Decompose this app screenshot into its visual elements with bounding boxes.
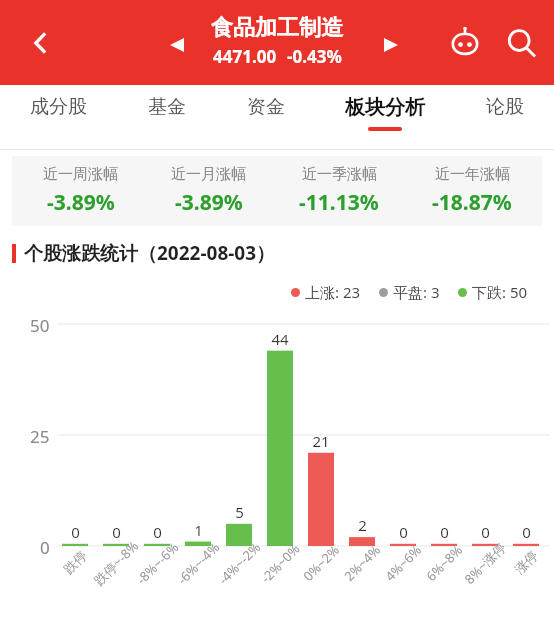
staticText: 0%~2%	[299, 541, 343, 585]
staticText: 1	[194, 520, 203, 540]
button[interactable]: Next sector	[374, 28, 408, 62]
staticText: 8%~涨停	[460, 538, 510, 588]
staticText: 资金	[247, 95, 285, 119]
staticText: 近一季涨幅	[302, 165, 377, 184]
button[interactable]: 成分股	[24, 85, 93, 136]
button[interactable]: 下跌: 50	[458, 282, 528, 302]
staticText: 基金	[148, 95, 186, 119]
staticText: 0	[440, 522, 449, 542]
staticText: 涨停	[511, 547, 541, 577]
staticText: -0.43%	[287, 45, 342, 68]
staticText: 0	[481, 522, 490, 542]
button[interactable]: 近一年涨幅	[432, 165, 512, 217]
staticText: 4471.00	[213, 45, 277, 68]
button[interactable]: Search	[498, 20, 544, 66]
staticText: -4%~-2%	[214, 538, 265, 588]
staticText: -3.89%	[175, 188, 243, 217]
staticText: -3.89%	[47, 188, 115, 217]
staticText: 0	[71, 522, 80, 542]
button[interactable]: Assistant	[442, 20, 488, 66]
staticText: 论股	[486, 95, 524, 119]
button[interactable]: Previous sector	[160, 28, 194, 62]
staticText: -11.13%	[299, 188, 379, 217]
staticText: -18.87%	[432, 188, 512, 217]
button[interactable]: 近一季涨幅	[299, 165, 379, 217]
staticText: 4%~6%	[381, 541, 425, 585]
staticText: 跌停~-8%	[90, 537, 142, 589]
staticText: 50	[30, 314, 50, 337]
staticText: -6%~-4%	[173, 538, 224, 588]
button[interactable]: 上涨: 23	[291, 282, 361, 302]
staticText: 5	[235, 502, 244, 522]
button[interactable]: 论股	[480, 85, 530, 136]
staticText: 0	[399, 522, 408, 542]
staticText: 6%~8%	[422, 541, 466, 585]
staticText: 跌停	[60, 547, 90, 577]
staticText: 上涨: 23	[305, 282, 361, 302]
button[interactable]: Back	[20, 22, 62, 64]
button[interactable]: 资金	[241, 85, 291, 136]
staticText: 44	[271, 329, 289, 349]
button[interactable]: 平盘: 3	[379, 282, 440, 302]
staticText: 0	[153, 522, 162, 542]
button[interactable]: 板块分析	[339, 85, 431, 141]
staticText: 下跌: 50	[472, 282, 528, 302]
button[interactable]: 近一周涨幅	[43, 165, 118, 217]
staticText: 0	[522, 522, 531, 542]
staticText: 近一年涨幅	[435, 165, 510, 184]
staticText: 近一月涨幅	[171, 165, 246, 184]
staticText: 2	[358, 515, 367, 535]
staticText: 25	[30, 425, 50, 448]
staticText: 食品加工制造	[211, 14, 343, 42]
staticText: 成分股	[30, 95, 87, 119]
staticText: -8%~-6%	[132, 538, 183, 588]
staticText: 2%~4%	[340, 541, 384, 585]
staticText: 个股涨跌统计（2022-08-03）	[24, 240, 276, 266]
staticText: 21	[312, 431, 330, 451]
staticText: 0	[112, 522, 121, 542]
staticText: 0	[40, 536, 50, 559]
staticText: 板块分析	[345, 95, 425, 120]
button[interactable]: 近一月涨幅	[171, 165, 246, 217]
staticText: 平盘: 3	[393, 282, 440, 302]
staticText: 近一周涨幅	[43, 165, 118, 184]
staticText: -2%~0%	[257, 539, 304, 587]
button[interactable]: 基金	[142, 85, 192, 136]
